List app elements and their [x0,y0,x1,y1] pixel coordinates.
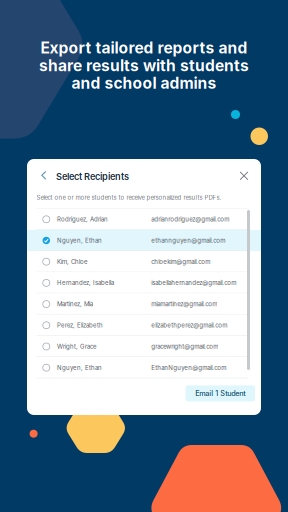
button[interactable]: Rodriguez, Adrian [27,209,261,230]
staticText: isabellahernandez@gmail.com [151,279,236,286]
staticText: ethannguyen@gmail.com [151,237,225,244]
staticText: miamartinez@gmail.com [151,300,217,308]
button[interactable]: Nguyen, Ethan [27,357,261,378]
staticText: Nguyen, Ethan [57,237,102,244]
staticText: Select Recipients [56,171,129,182]
staticText: elizabethperez@gmail.com [151,322,227,329]
staticText: adrianrodriguez@gmail.com [151,216,229,223]
staticText: Perez, Elizabeth [57,322,103,329]
button[interactable]: Close [236,167,252,184]
staticText: Export tailored reports and [40,38,247,57]
button[interactable]: Nguyen, Ethan [27,230,261,251]
button[interactable]: Martinez, Mia [27,293,261,315]
staticText: chloekim@gmail.com [151,258,210,265]
staticText: Rodriguez, Adrian [57,216,108,223]
staticText: Select one or more students to receive p… [37,194,222,201]
button[interactable]: Email 1 Student [185,385,255,401]
button[interactable]: Wright, Grace [27,336,261,357]
button[interactable]: Kim, Chloe [27,251,261,272]
staticText: Email 1 Student [195,389,245,398]
staticText: Nguyen, Ethan [57,364,102,371]
button[interactable]: Perez, Elizabeth [27,315,261,336]
button[interactable]: Hernandez, Isabella [27,272,261,293]
staticText: Kim, Chloe [57,258,88,265]
staticText: EthanNguyen@gmail.com [151,364,226,371]
staticText: and school admins [71,74,216,93]
button[interactable]: Back [37,167,51,184]
staticText: Hernandez, Isabella [57,279,114,286]
staticText: Wright, Grace [57,343,97,350]
staticText: Martinez, Mia [57,300,93,308]
staticText: share results with students [39,56,249,75]
staticText: gracewright@gmail.com [151,343,218,350]
